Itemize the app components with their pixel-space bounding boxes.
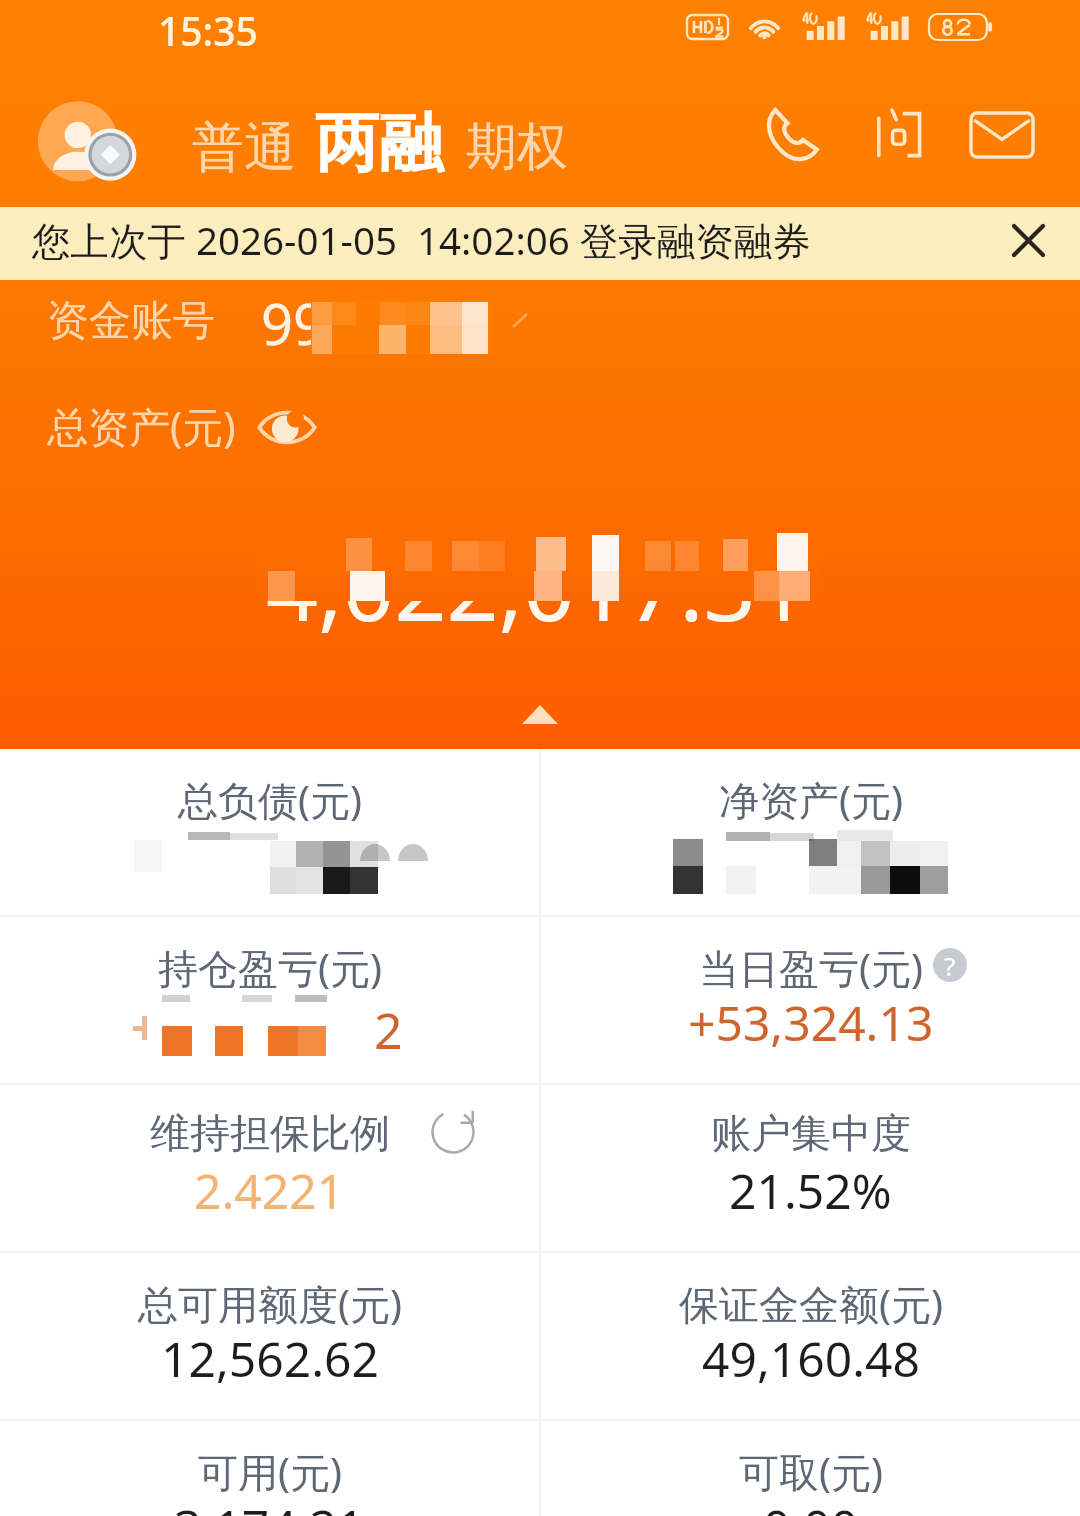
button[interactable]: Close notice [997,209,1059,271]
staticText: 总可用额度(元) [138,1276,402,1331]
staticText: 0.00 [763,1494,859,1516]
button[interactable]: 普通 [192,115,296,181]
staticText: 当日盈亏(元) [699,940,923,995]
button[interactable]: 可取(元) [541,1421,1080,1516]
staticText: 可用(元) [198,1444,342,1499]
button[interactable]: Account avatar [32,92,148,208]
staticText: +53,324.13 [688,990,934,1055]
staticText: 21.52% [729,1158,892,1223]
button[interactable]: 可用(元) [0,1421,539,1516]
button[interactable]: 总负债(元) [0,749,539,915]
staticText: 4,022,017.31 [266,524,808,648]
button[interactable]: 当日盈亏(元) [541,917,1080,1083]
button[interactable]: 净资产(元) [541,749,1080,915]
button[interactable]: 持仓盈亏(元) [0,917,539,1083]
staticText: 3,174.21 [174,1494,365,1516]
staticText: 49,160.48 [702,1326,920,1391]
button[interactable]: 维持担保比例 [0,1085,539,1251]
button[interactable]: Toggle balance visibility [257,406,317,449]
button[interactable]: 总可用额度(元) [0,1253,539,1419]
staticText: 资金账号 [47,295,215,348]
button[interactable]: Help [868,104,928,164]
staticText: 您上次于 2026-01-05 14:02:06 登录融资融券 [32,214,811,267]
button[interactable]: 保证金金额(元) [541,1253,1080,1419]
staticText: 总资产(元) [47,398,236,454]
button[interactable]: 账户集中度 [541,1085,1080,1251]
staticText: ? [944,948,956,982]
staticText: 12,562.62 [161,1326,379,1391]
staticText: 总负债(元) [178,772,362,827]
button[interactable]: Call [761,104,821,164]
staticText: 2 [374,996,403,1064]
staticText: 可取(元) [739,1444,883,1499]
staticText: 维持担保比例 [150,1108,390,1158]
button[interactable]: 两融 [315,103,443,184]
button[interactable]: Refresh [430,1109,476,1155]
staticText: 15:35 [158,4,258,57]
staticText: 账户集中度 [711,1108,911,1158]
button[interactable]: Messages [971,104,1033,166]
button[interactable]: Help [933,948,967,982]
staticText: 99 [261,285,326,361]
staticText: 保证金金额(元) [679,1276,943,1331]
button[interactable]: 期权 [466,115,568,179]
staticText: 净资产(元) [719,772,903,827]
staticText: 持仓盈亏(元) [158,940,382,995]
staticText: 2.4221 [194,1158,345,1223]
